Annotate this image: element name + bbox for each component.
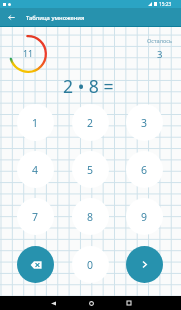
staticText: 6 [141,163,148,177]
button[interactable]: Recents [110,296,148,310]
button[interactable]: 0 [72,246,109,283]
button[interactable]: 6 [126,151,163,188]
button[interactable]: Back [34,296,72,310]
staticText: 4 [32,163,39,177]
staticText: 8 [87,210,94,224]
staticText: Таблица умножения [26,14,85,22]
staticText: 2 [87,116,94,130]
staticText: 0 [87,258,94,272]
button[interactable]: Back [0,8,22,27]
staticText: 1 [32,116,39,130]
staticText: 3 [141,116,148,130]
button[interactable]: 1 [17,104,54,141]
button[interactable]: Backspace [17,246,54,283]
staticText: Осталось [147,37,173,45]
staticText: 9 [141,210,148,224]
button[interactable]: 5 [72,151,109,188]
staticText: 5 [87,163,94,177]
staticText: 11 [23,48,34,60]
button[interactable]: 9 [126,198,163,235]
staticText: 15:23 [159,1,172,8]
staticText: 7 [32,210,39,224]
button[interactable]: Home [72,296,110,310]
button[interactable]: 4 [17,151,54,188]
button[interactable]: 3 [126,104,163,141]
button[interactable]: Next [126,246,163,283]
staticText: 3 [157,48,163,61]
button[interactable]: 8 [72,198,109,235]
button[interactable]: 7 [17,198,54,235]
button[interactable]: 2 [72,104,109,141]
staticText: 2 • 8 = [63,74,114,98]
